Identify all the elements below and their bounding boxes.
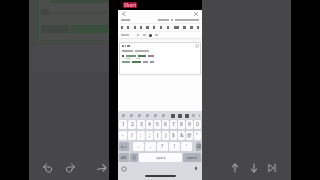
button[interactable]: ! — [169, 142, 180, 151]
button[interactable]: space — [139, 153, 182, 162]
staticText: Short — [124, 2, 137, 8]
button[interactable]: Run cell — [195, 44, 199, 48]
staticText: 5 — [156, 121, 159, 128]
button[interactable]: Tool 3 — [139, 25, 142, 30]
button[interactable]: 0 — [194, 120, 201, 129]
staticText: 9 — [188, 121, 191, 128]
button[interactable]: : — [137, 131, 145, 140]
button[interactable]: Format 1 — [129, 113, 134, 118]
button[interactable]: Tool 1 — [126, 25, 130, 30]
button[interactable]: " — [194, 131, 201, 140]
staticText: 2 — [131, 121, 134, 128]
button[interactable]: Short — [123, 2, 137, 8]
button[interactable]: 5 — [154, 120, 161, 129]
button[interactable]: Format 3 — [145, 113, 150, 118]
button[interactable]: #+= — [119, 142, 129, 151]
staticText: ( — [157, 132, 159, 139]
button[interactable]: Format 5 — [161, 113, 166, 118]
button[interactable]: ) — [162, 131, 169, 140]
button[interactable]: Tool 2 — [133, 25, 137, 30]
button[interactable]: ' — [181, 142, 192, 151]
button[interactable]: . — [133, 142, 144, 151]
staticText: @ — [187, 132, 192, 139]
staticText: 7 — [172, 121, 175, 128]
button[interactable]: Tool 5 — [152, 25, 156, 30]
button[interactable]: 6 — [162, 120, 169, 129]
button[interactable]: Format 4 — [153, 113, 158, 118]
staticText: ' — [186, 143, 188, 150]
staticText: 8 — [180, 121, 183, 128]
staticText: ? — [161, 143, 164, 150]
staticText: search — [187, 156, 197, 160]
button[interactable]: Edit 0 — [170, 113, 175, 118]
button[interactable]: 9 — [186, 120, 193, 129]
staticText: ) — [165, 132, 167, 139]
button[interactable]: Edit 2 — [184, 113, 189, 118]
staticText: ! — [174, 143, 176, 150]
button[interactable]: ☺ — [130, 153, 138, 162]
button[interactable]: ABC — [119, 153, 129, 162]
staticText: " — [196, 132, 199, 139]
staticText: 4 — [148, 121, 151, 128]
button[interactable]: Format 2 — [137, 113, 142, 118]
button[interactable]: - — [119, 131, 127, 140]
button[interactable]: Scroll down — [246, 160, 262, 176]
staticText: / — [131, 132, 133, 139]
button[interactable]: Close — [193, 11, 199, 17]
staticText: $ — [172, 132, 175, 139]
staticText: ☺ — [132, 155, 137, 160]
button[interactable]: ⌫ — [196, 142, 201, 151]
button[interactable]: Undo — [40, 160, 56, 176]
button[interactable]: Tool 7 — [166, 25, 170, 30]
staticText: ABC — [121, 156, 128, 160]
button[interactable]: search — [183, 153, 201, 162]
button[interactable]: 2 — [128, 120, 136, 129]
button[interactable]: Tool 10 — [189, 25, 193, 30]
button[interactable]: Format 0 — [121, 113, 126, 118]
button[interactable]: Redo — [62, 160, 78, 176]
button[interactable]: More 1 — [199, 113, 200, 118]
staticText: ; — [149, 132, 151, 139]
button[interactable]: Tool 11 — [196, 25, 200, 30]
staticText: #+= — [121, 145, 127, 149]
staticText: - — [122, 132, 124, 139]
button[interactable]: , — [145, 142, 156, 151]
button[interactable]: 3 — [137, 120, 145, 129]
button[interactable]: ( — [154, 131, 161, 140]
button[interactable]: Tool 0 — [120, 25, 123, 30]
button[interactable]: 8 — [178, 120, 185, 129]
button[interactable]: Dictation — [193, 166, 199, 172]
staticText: space — [156, 155, 166, 160]
staticText: 1 — [122, 121, 125, 128]
staticText: & — [180, 132, 184, 139]
button[interactable]: Skip forward — [94, 160, 110, 176]
staticText: ⌫ — [196, 144, 201, 149]
button[interactable]: Scroll up — [227, 160, 243, 176]
button[interactable]: More 0 — [191, 113, 196, 118]
button[interactable]: 7 — [170, 120, 177, 129]
button[interactable]: ; — [146, 131, 153, 140]
button[interactable]: Next — [264, 160, 280, 176]
button[interactable]: Tool 4 — [145, 25, 149, 30]
button[interactable]: Edit 1 — [177, 113, 182, 118]
staticText: 0 — [196, 121, 199, 128]
staticText: , — [150, 143, 152, 150]
button[interactable]: Back — [121, 11, 127, 17]
button[interactable]: 1 — [119, 120, 127, 129]
button[interactable]: Tool 9 — [182, 25, 186, 30]
button[interactable]: ? — [157, 142, 168, 151]
button[interactable]: 4 — [146, 120, 153, 129]
staticText: 3 — [140, 121, 143, 128]
button[interactable]: $ — [170, 131, 177, 140]
button[interactable]: @ — [186, 131, 193, 140]
staticText: . — [138, 143, 140, 150]
button[interactable]: Change language — [121, 166, 127, 172]
button[interactable]: / — [128, 131, 136, 140]
staticText: 6 — [164, 121, 167, 128]
button[interactable]: Tool 8 — [173, 25, 180, 30]
staticText: : — [140, 132, 142, 139]
button[interactable]: Tool 6 — [159, 25, 163, 30]
button[interactable]: & — [178, 131, 185, 140]
